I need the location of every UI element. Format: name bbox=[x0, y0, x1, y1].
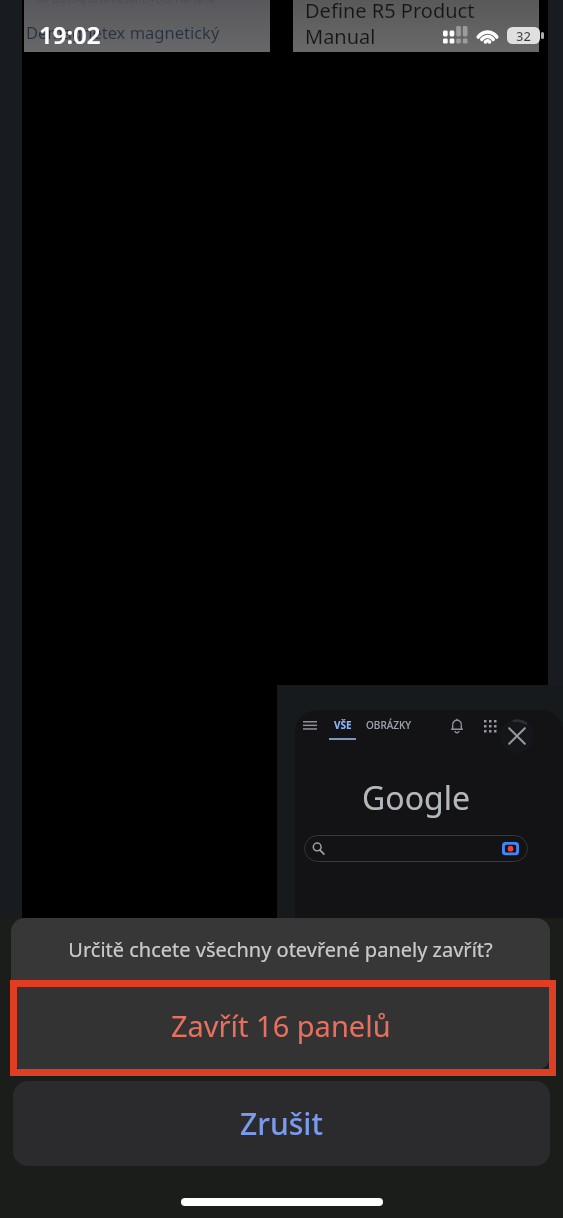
button[interactable]: Notifications bbox=[446, 715, 468, 737]
staticText: Demagnetex magnetický bbox=[26, 21, 220, 43]
button[interactable]: Zavřít 16 panelů bbox=[11, 980, 550, 1070]
button[interactable]: VŠE bbox=[325, 710, 359, 746]
staticText: Zavřít 16 panelů bbox=[171, 1006, 391, 1045]
button[interactable]: Define R5 Product Manual bbox=[293, 0, 539, 52]
button[interactable]: Menu bbox=[295, 710, 563, 918]
staticText: Určitě chcete všechny otevřené panely za… bbox=[68, 936, 493, 963]
button[interactable]: OBRÁZKY bbox=[366, 715, 412, 735]
button[interactable]: Apps bbox=[479, 715, 501, 737]
button[interactable]: Search bbox=[304, 835, 528, 862]
button[interactable]: Close tab bbox=[500, 719, 534, 753]
button[interactable]: Zrušit bbox=[13, 1081, 550, 1166]
staticText: 19:02 bbox=[39, 18, 101, 51]
staticText: Zrušit bbox=[240, 1103, 323, 1144]
staticText: Define R5 Product Manual bbox=[305, 0, 475, 50]
staticText: Google bbox=[362, 776, 471, 820]
button[interactable]: Menu bbox=[298, 713, 322, 737]
staticText: VŠE bbox=[334, 718, 352, 732]
staticText: filtr pro zdroj do skříně Lian Li PC-O11… bbox=[37, 0, 215, 5]
button[interactable]: filtr pro zdroj do skříně Lian Li PC-O11… bbox=[24, 0, 270, 52]
staticText: OBRÁZKY bbox=[366, 718, 412, 732]
staticText: 32 bbox=[516, 27, 531, 44]
